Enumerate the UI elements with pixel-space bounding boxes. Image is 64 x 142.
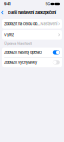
staticText: Zobrazit vychytávky	[4, 60, 37, 65]
button[interactable]: Zpět	[0, 9, 5, 15]
button[interactable]: Zobrazit na celou obrazovku	[2, 19, 62, 29]
staticText: 5G	[45, 2, 50, 6]
button[interactable]: Výřez	[2, 30, 62, 40]
staticText: Výřez	[4, 32, 14, 37]
staticText: Zobrazit nástroj operací	[4, 50, 42, 55]
staticText: Úprava hlasitosti	[4, 41, 32, 46]
staticText: Zobrazit na celou obrazovku	[4, 21, 39, 26]
staticText: 9:41	[4, 2, 11, 6]
staticText: Další nastavení zabezpečení	[8, 10, 56, 15]
staticText: Nastavení	[40, 21, 57, 26]
